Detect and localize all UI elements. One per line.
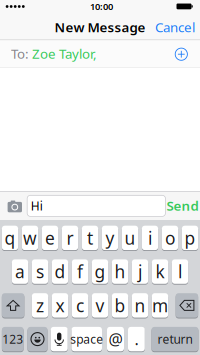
- staticText: u: [124, 226, 135, 249]
- staticText: h: [114, 260, 125, 283]
- staticText: m: [152, 294, 168, 317]
- button[interactable]: z: [32, 293, 48, 318]
- button[interactable]: t: [82, 225, 98, 251]
- button[interactable]: Emoji: [27, 326, 47, 352]
- button[interactable]: 123: [2, 326, 24, 352]
- staticText: v: [95, 294, 104, 317]
- button[interactable]: x: [52, 293, 68, 318]
- button[interactable]: a: [12, 259, 28, 284]
- button[interactable]: b: [112, 293, 128, 318]
- staticText: To:: [11, 45, 29, 62]
- button[interactable]: Cancel: [155, 18, 195, 36]
- staticText: Cancel: [155, 18, 195, 36]
- button[interactable]: n: [132, 293, 148, 318]
- button[interactable]: r: [62, 225, 78, 251]
- button[interactable]: i: [142, 225, 158, 251]
- staticText: 10:00: [90, 0, 113, 13]
- staticText: x: [55, 294, 64, 317]
- button[interactable]: c: [72, 293, 88, 318]
- button[interactable]: Delete: [176, 293, 198, 318]
- staticText: Zoe Taylor,: [32, 45, 97, 62]
- staticText: p: [184, 226, 195, 249]
- staticText: o: [165, 226, 175, 249]
- button[interactable]: return: [151, 326, 198, 352]
- staticText: w: [23, 226, 37, 249]
- staticText: y: [105, 226, 114, 249]
- button[interactable]: y: [102, 225, 118, 251]
- button[interactable]: m: [152, 293, 168, 318]
- staticText: n: [134, 294, 145, 317]
- button[interactable]: Send: [166, 197, 198, 214]
- button[interactable]: o: [162, 225, 178, 251]
- staticText: f: [77, 260, 83, 283]
- button[interactable]: v: [92, 293, 108, 318]
- button[interactable]: w: [22, 225, 38, 251]
- staticText: e: [45, 226, 55, 249]
- button[interactable]: f: [72, 259, 88, 284]
- button[interactable]: .: [128, 326, 145, 352]
- button[interactable]: @: [107, 326, 124, 352]
- staticText: space: [70, 331, 103, 347]
- button[interactable]: Camera: [8, 199, 22, 212]
- staticText: k: [155, 260, 164, 283]
- button[interactable]: p: [182, 225, 198, 251]
- staticText: Hi: [31, 198, 43, 214]
- staticText: s: [36, 260, 44, 283]
- button[interactable]: u: [122, 225, 138, 251]
- button[interactable]: s: [32, 259, 48, 284]
- button[interactable]: Add Contact: [174, 47, 188, 61]
- staticText: @: [108, 328, 122, 350]
- staticText: b: [114, 294, 125, 317]
- button[interactable]: space: [71, 326, 102, 352]
- staticText: q: [4, 226, 15, 249]
- button[interactable]: k: [152, 259, 168, 284]
- staticText: j: [138, 260, 142, 283]
- staticText: l: [178, 260, 182, 283]
- staticText: r: [66, 226, 73, 249]
- staticText: t: [87, 226, 93, 249]
- staticText: d: [54, 260, 65, 283]
- button[interactable]: e: [42, 225, 58, 251]
- button[interactable]: l: [172, 259, 188, 284]
- button[interactable]: Shift: [2, 293, 24, 318]
- staticText: z: [36, 294, 44, 317]
- staticText: New Message: [54, 18, 145, 36]
- staticText: a: [15, 260, 25, 283]
- button[interactable]: j: [132, 259, 148, 284]
- staticText: 123: [2, 331, 23, 347]
- button[interactable]: h: [112, 259, 128, 284]
- staticText: g: [94, 260, 105, 283]
- staticText: .: [134, 328, 138, 350]
- button[interactable]: d: [52, 259, 68, 284]
- button[interactable]: Dictate: [51, 326, 68, 352]
- staticText: i: [148, 226, 152, 249]
- staticText: c: [76, 294, 84, 317]
- staticText: return: [157, 331, 192, 347]
- button[interactable]: q: [2, 225, 18, 251]
- staticText: Send: [166, 197, 198, 214]
- button[interactable]: g: [92, 259, 108, 284]
